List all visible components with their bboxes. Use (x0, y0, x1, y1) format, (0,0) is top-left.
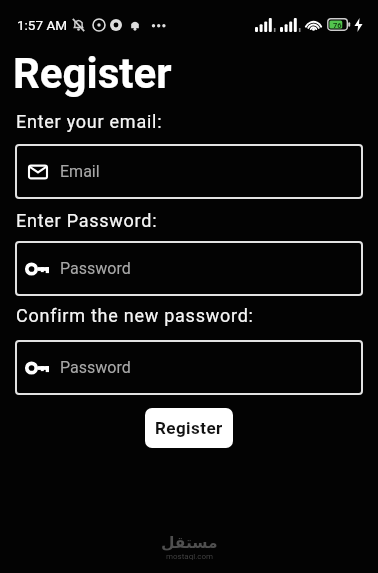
button[interactable]: Password (15, 241, 363, 296)
staticText: Email (60, 162, 100, 181)
staticText: Register (155, 418, 223, 438)
staticText: مستقل (161, 534, 218, 552)
staticText: Password (60, 259, 131, 278)
button[interactable]: Password (15, 340, 363, 395)
staticText: Enter Password: (16, 210, 158, 231)
staticText: Register (13, 49, 172, 98)
staticText: Enter your email: (16, 111, 163, 132)
button[interactable]: Register (145, 408, 233, 448)
staticText: 1:57 AM (17, 17, 67, 33)
staticText: Password (60, 358, 131, 377)
button[interactable]: Email (15, 144, 363, 199)
staticText: mostaql.com (166, 552, 214, 561)
staticText: 76 (333, 21, 342, 30)
staticText: Confirm the new password: (16, 305, 254, 326)
